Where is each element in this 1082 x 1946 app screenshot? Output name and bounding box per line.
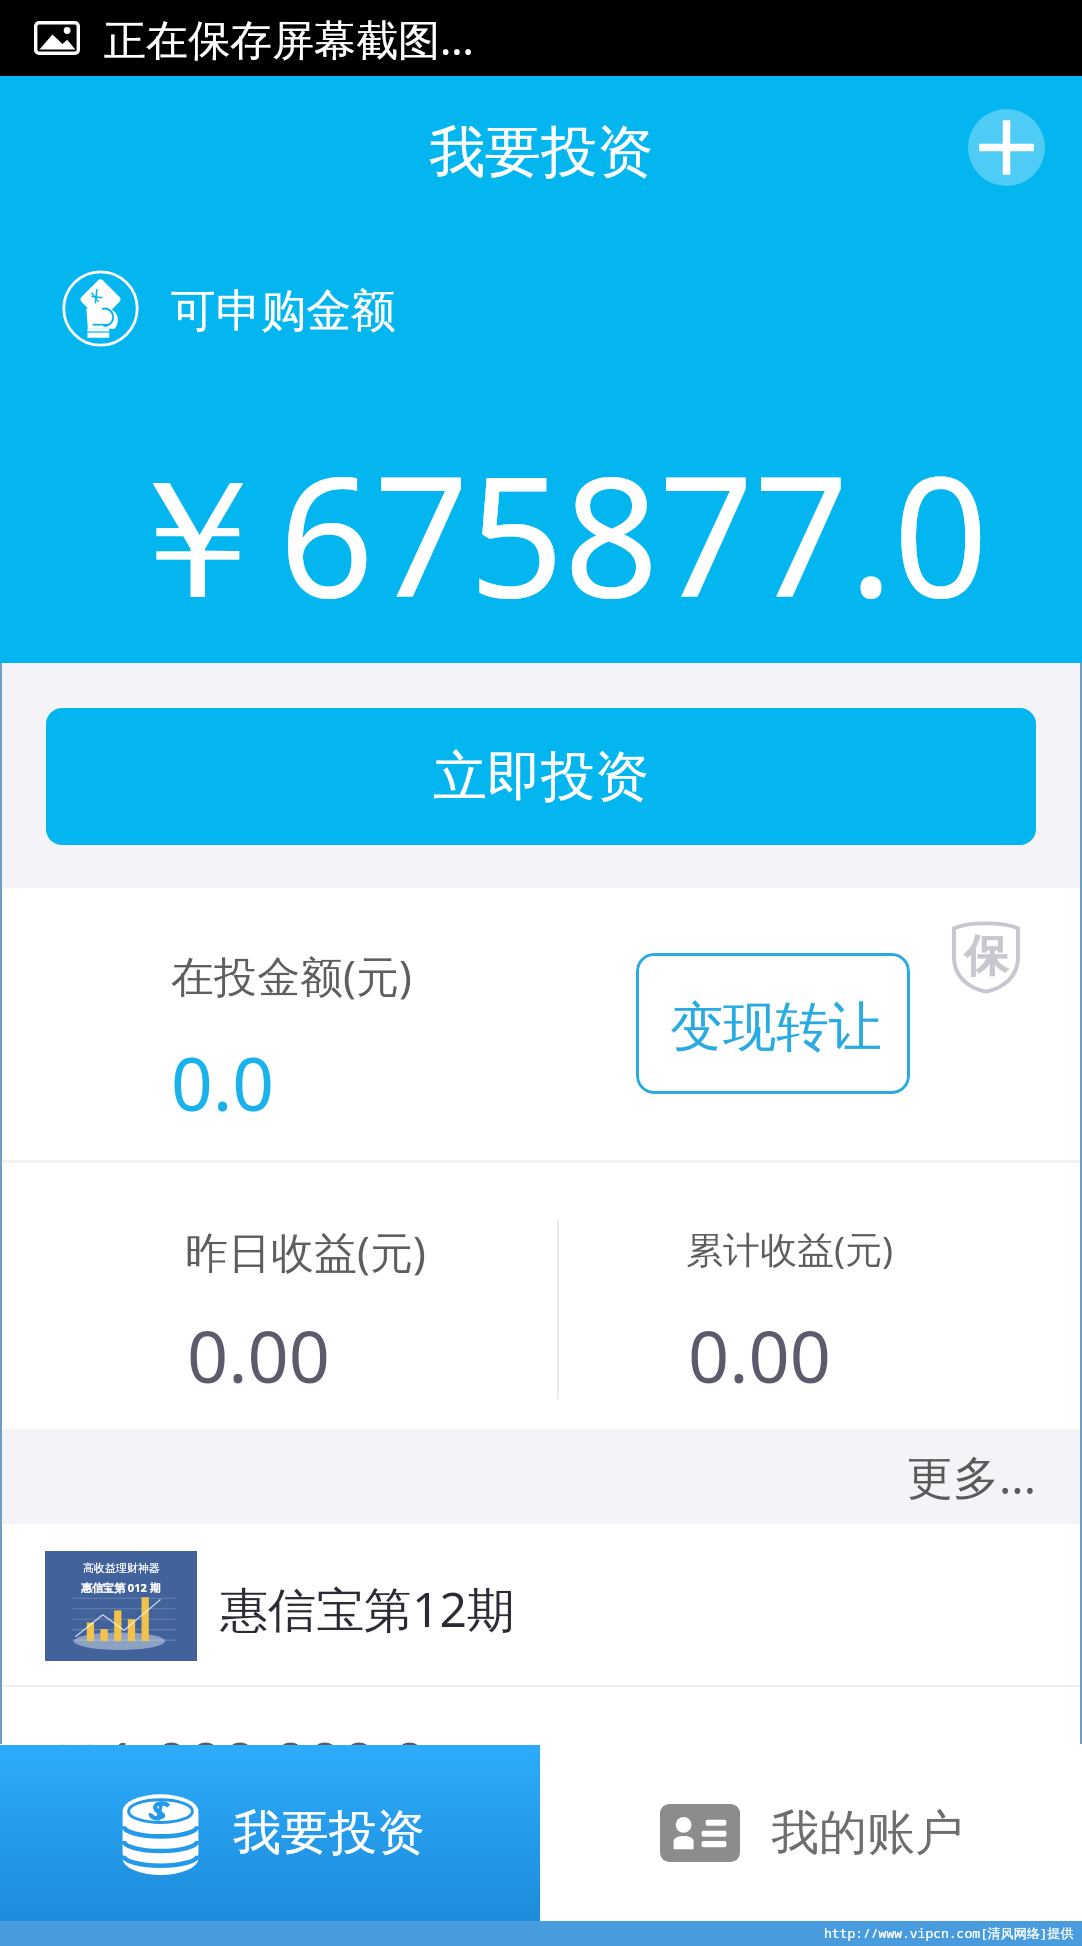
button[interactable]: Add xyxy=(968,109,1045,186)
staticText: 保 xyxy=(964,929,1008,984)
staticText: 0.00 xyxy=(688,1306,831,1404)
staticText: 累计收益(元) xyxy=(686,1223,894,1274)
staticText: 变现转让 xyxy=(670,994,882,1061)
staticText: 我要投资 xyxy=(233,1803,425,1863)
staticText: ￥1,000,000.0 xyxy=(44,1722,427,1804)
staticText: 昨日收益(元) xyxy=(185,1222,426,1281)
staticText: 惠信宝第12期 xyxy=(220,1576,515,1642)
staticText: 在投金额(元) xyxy=(171,946,412,1005)
button[interactable]: 立即投资 xyxy=(46,708,1036,845)
staticText: http://www.vipcn.com[清风网络]提供 xyxy=(824,1924,1074,1942)
button[interactable]: 变现转让 xyxy=(636,953,910,1094)
button[interactable]: 我要投资 xyxy=(0,1745,540,1921)
staticText: ￥675877.0 xyxy=(113,420,989,647)
staticText: 0.0 xyxy=(171,1033,275,1132)
staticText: 更多... xyxy=(907,1445,1036,1508)
staticText: 惠信宝第 012 期 xyxy=(81,1580,161,1595)
staticText: 立即投资 xyxy=(433,743,649,811)
staticText: 我要投资 xyxy=(429,117,653,188)
button[interactable]: 我的账户 xyxy=(540,1745,1082,1921)
staticText: 正在保存屏幕截图... xyxy=(104,10,474,67)
staticText: 我的账户 xyxy=(771,1803,963,1863)
button[interactable]: 更多... xyxy=(867,1429,1082,1524)
staticText: 高收益理财神器 xyxy=(83,1561,160,1575)
button[interactable]: 高收益理财神器 xyxy=(0,1524,1082,1685)
staticText: 0.00 xyxy=(187,1306,330,1404)
staticText: 可申购金额 xyxy=(171,283,396,340)
